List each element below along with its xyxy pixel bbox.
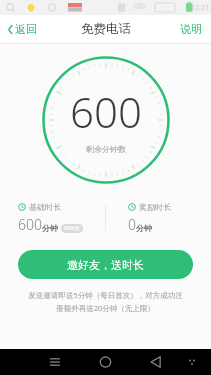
- button[interactable]: 邀好友，送时长: [18, 250, 193, 279]
- other: Navigation bar: [0, 349, 211, 375]
- staticText: 0: [128, 215, 136, 234]
- staticText: 免费电话: [81, 21, 131, 37]
- staticText: 返回: [15, 22, 37, 36]
- button[interactable]: 说明: [171, 17, 211, 41]
- staticText: 600: [18, 215, 42, 234]
- staticText: 奖励时长: [139, 202, 171, 212]
- button[interactable]: 返回: [0, 17, 45, 41]
- staticText: 基础时长: [29, 202, 61, 212]
- staticText: 剩余分钟数: [86, 144, 126, 154]
- staticText: 分钟: [136, 223, 152, 233]
- staticText: 12:27: [191, 3, 209, 13]
- staticText: 600/月: [64, 225, 80, 232]
- staticText: 册额外再送20分钟（无上限）: [56, 303, 155, 313]
- staticText: 分钟: [42, 223, 58, 233]
- staticText: 600: [70, 83, 142, 140]
- staticText: 发送邀请即送5分钟（每日首次），对方成功注: [28, 290, 183, 300]
- staticText: 说明: [180, 22, 202, 36]
- staticText: 邀好友，送时长: [67, 258, 144, 272]
